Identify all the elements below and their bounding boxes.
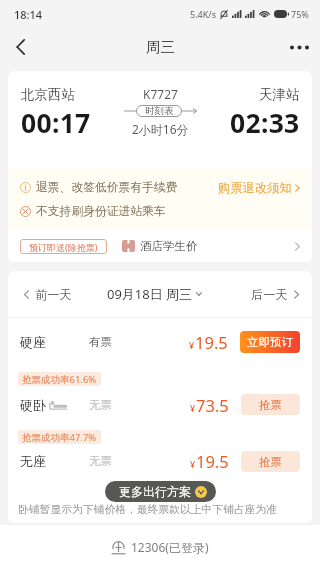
staticText: 后一天 [251, 287, 288, 302]
staticText: 酒店学生价 [140, 239, 198, 253]
staticText: 2小时16分 [132, 121, 189, 137]
staticText: 有票 [89, 335, 112, 349]
staticText: 更多出行方案 [119, 484, 191, 499]
staticText: 购票退改须知 [218, 180, 292, 195]
staticText: 硬卧 [20, 397, 46, 413]
staticText: 无票 [89, 398, 112, 412]
button[interactable]: Back [0, 28, 40, 66]
staticText: 75% [291, 8, 309, 20]
button[interactable]: 后一天 [251, 287, 299, 302]
staticText: 立即预订 [247, 335, 293, 349]
button[interactable]: 更多出行方案 [105, 481, 216, 502]
staticText: 无票 [89, 454, 112, 468]
staticText: ¥ [190, 458, 196, 470]
staticText: 硬座 [20, 334, 46, 350]
staticText: 时刻表 [145, 105, 174, 117]
staticText: 不支持刷身份证进站乘车 [36, 204, 166, 219]
staticText: 02:33 [230, 105, 300, 141]
button[interactable]: 预订即送(除抢票) [8, 230, 312, 262]
staticText: 抢票成功率61.6% [22, 373, 97, 386]
staticText: 09月18日 周三 [107, 285, 193, 303]
staticText: 12306(已登录) [131, 539, 209, 555]
button[interactable]: 12306(已登录) [111, 539, 209, 555]
button[interactable]: 前一天 [24, 287, 72, 302]
staticText: 无座 [20, 453, 46, 469]
button[interactable]: 立即预订 [240, 331, 300, 353]
staticText: 19.5 [195, 331, 228, 353]
staticText: 抢票 [259, 455, 282, 469]
staticText: 退票、改签低价票有手续费 [36, 180, 178, 195]
staticText: 5.4K/s [190, 8, 216, 20]
staticText: ¥ [189, 339, 195, 351]
staticText: 抢票成功率47.7% [22, 431, 97, 444]
staticText: 抢票 [259, 398, 282, 412]
staticText: 周三 [146, 38, 175, 56]
staticText: 19.5 [196, 450, 229, 472]
staticText: 前一天 [35, 287, 72, 302]
button[interactable]: 抢票 [241, 451, 300, 472]
staticText: 北京西站 [21, 86, 75, 103]
staticText: 预订即送(除抢票) [29, 241, 98, 253]
staticText: 73.5 [196, 394, 229, 416]
staticText: 18:14 [14, 7, 43, 22]
button[interactable]: 09月18日 周三 [107, 285, 202, 303]
staticText: K7727 [143, 86, 178, 102]
button[interactable]: 抢票 [241, 394, 300, 415]
staticText: 天津站 [259, 86, 300, 103]
button[interactable]: More options [278, 28, 320, 66]
staticText: 卧铺暂显示为下铺价格，最终票款以上中下铺占座为准 [18, 503, 278, 517]
staticText: 00:17 [21, 105, 91, 141]
button[interactable]: 购票退改须知 [218, 180, 300, 195]
staticText: ¥ [190, 402, 196, 414]
button[interactable]: 时刻表 [136, 105, 182, 117]
